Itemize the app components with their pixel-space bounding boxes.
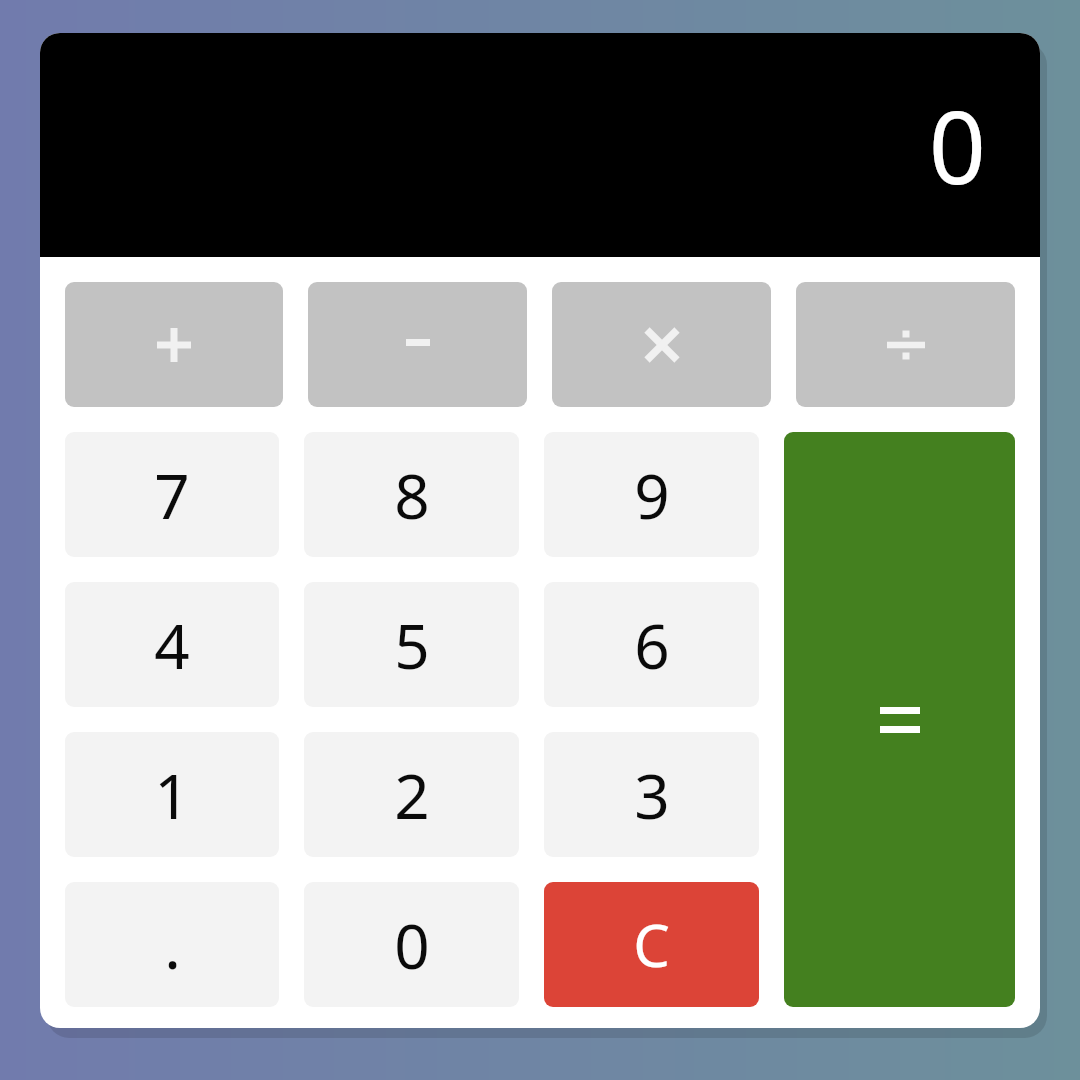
button[interactable]: 1	[65, 732, 279, 857]
button[interactable]: 4	[65, 582, 279, 707]
staticText: 6	[634, 603, 670, 687]
button[interactable]: 6	[544, 582, 759, 707]
button[interactable]: Equals	[784, 432, 1015, 1007]
button[interactable]: Display	[40, 33, 1040, 257]
staticText: 5	[394, 603, 430, 687]
staticText: 0	[928, 77, 986, 213]
staticText: 4	[154, 603, 190, 687]
staticText: 1	[154, 753, 190, 837]
button[interactable]: Minus	[308, 282, 527, 407]
button[interactable]: Plus	[65, 282, 283, 407]
button[interactable]: 5	[304, 582, 519, 707]
staticText: .	[164, 903, 181, 987]
staticText: 8	[394, 453, 430, 537]
button[interactable]: 7	[65, 432, 279, 557]
button[interactable]: 9	[544, 432, 759, 557]
staticText: 7	[154, 453, 190, 537]
button[interactable]: C	[544, 882, 759, 1007]
staticText: 9	[634, 453, 670, 537]
staticText: 2	[394, 753, 430, 837]
staticText: 0	[394, 903, 430, 987]
button[interactable]: 0	[304, 882, 519, 1007]
button[interactable]: 3	[544, 732, 759, 857]
button[interactable]: Divide	[796, 282, 1015, 407]
button[interactable]: 2	[304, 732, 519, 857]
button[interactable]: 8	[304, 432, 519, 557]
button[interactable]: .	[65, 882, 279, 1007]
staticText: C	[633, 905, 670, 984]
staticText: 3	[634, 753, 670, 837]
button[interactable]: Multiply	[552, 282, 771, 407]
